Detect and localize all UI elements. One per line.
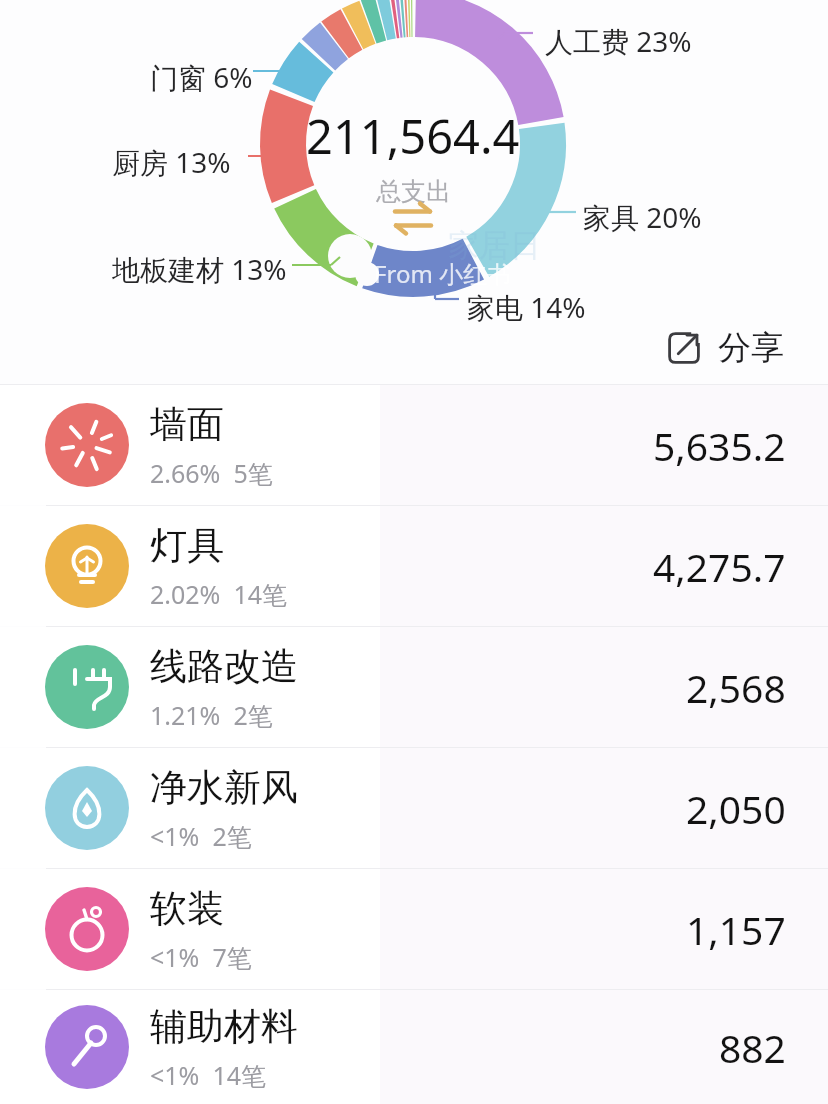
staticText: 线路改造 bbox=[150, 643, 298, 690]
staticText: 家电 14% bbox=[467, 288, 586, 326]
staticText: 人工费 23% bbox=[545, 22, 692, 60]
staticText: 灯具 bbox=[150, 522, 224, 569]
staticText: 2,050 bbox=[686, 782, 786, 835]
staticText: 家居日 bbox=[448, 226, 541, 265]
staticText: <1% 7笔 bbox=[150, 940, 252, 974]
staticText: 分享 bbox=[718, 327, 784, 369]
staticText: 2.66% 5笔 bbox=[150, 456, 273, 490]
button[interactable]: 线路改造 bbox=[0, 627, 828, 747]
staticText: 辅助材料 bbox=[150, 1003, 298, 1050]
staticText: From 小红书 bbox=[374, 257, 512, 290]
staticText: 2,568 bbox=[686, 661, 786, 714]
staticText: 总支出 bbox=[376, 176, 451, 207]
staticText: 211,564.4 bbox=[306, 104, 520, 168]
staticText: <1% 2笔 bbox=[150, 819, 252, 853]
button[interactable]: 辅助材料 bbox=[0, 990, 828, 1104]
staticText: 净水新风 bbox=[150, 764, 298, 811]
staticText: 2.02% 14笔 bbox=[150, 577, 287, 611]
staticText: 4,275.7 bbox=[653, 540, 786, 593]
staticText: 5,635.2 bbox=[653, 419, 786, 472]
staticText: 软装 bbox=[150, 885, 224, 932]
staticText: 墙面 bbox=[150, 401, 224, 448]
staticText: 1,157 bbox=[686, 903, 786, 956]
staticText: 家具 20% bbox=[583, 198, 702, 236]
button[interactable]: 墙面 bbox=[0, 385, 828, 505]
staticText: 厨房 13% bbox=[112, 143, 231, 181]
staticText: <1% 14笔 bbox=[150, 1058, 266, 1092]
staticText: 门窗 6% bbox=[150, 58, 253, 96]
button[interactable]: 灯具 bbox=[0, 506, 828, 626]
button[interactable]: 软装 bbox=[0, 869, 828, 989]
staticText: 882 bbox=[719, 1021, 786, 1074]
staticText: 地板建材 13% bbox=[112, 250, 287, 288]
button[interactable]: 净水新风 bbox=[0, 748, 828, 868]
button[interactable]: 分享 bbox=[662, 321, 788, 375]
staticText: 1.21% 2笔 bbox=[150, 698, 273, 732]
